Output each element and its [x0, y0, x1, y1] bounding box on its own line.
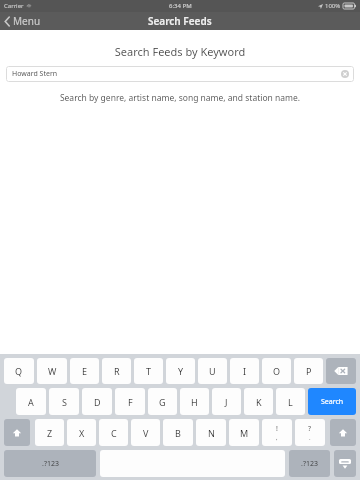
button[interactable]: E	[70, 358, 99, 384]
button[interactable]: .?123	[289, 450, 330, 477]
staticText: Q	[15, 365, 23, 377]
staticText: H	[191, 396, 198, 408]
button[interactable]: L	[276, 388, 305, 415]
button[interactable]: Shift	[4, 419, 30, 446]
staticText: Search	[321, 397, 344, 407]
staticText: E	[82, 365, 88, 377]
staticText: Z	[47, 427, 53, 439]
staticText: Howard Stern	[12, 69, 58, 79]
staticText: .?123	[301, 459, 318, 469]
button[interactable]: M	[229, 419, 259, 446]
button[interactable]: T	[134, 358, 163, 384]
button[interactable]: R	[102, 358, 131, 384]
staticText: O	[273, 365, 281, 377]
staticText: M	[240, 427, 249, 439]
staticText: S	[62, 396, 67, 408]
staticText: W	[48, 365, 57, 377]
button[interactable]: G	[148, 388, 177, 415]
staticText: Y	[178, 365, 184, 377]
button[interactable]: Backspace	[326, 358, 356, 384]
button[interactable]: ?	[295, 419, 325, 446]
button[interactable]: D	[82, 388, 112, 415]
button[interactable]: Howard Stern	[6, 66, 354, 82]
staticText: Menu	[13, 14, 41, 28]
button[interactable]: B	[163, 419, 193, 446]
button[interactable]: N	[196, 419, 226, 446]
button[interactable]: Y	[166, 358, 195, 384]
staticText: ?	[308, 424, 312, 434]
staticText: V	[143, 427, 149, 439]
button[interactable]: Menu	[0, 12, 49, 30]
staticText: T	[146, 365, 152, 377]
staticText: A	[28, 396, 34, 408]
button[interactable]: U	[198, 358, 227, 384]
staticText: ,	[276, 434, 278, 442]
staticText: D	[94, 396, 101, 408]
staticText: K	[256, 396, 262, 408]
button[interactable]: S	[49, 388, 79, 415]
staticText: Carrier	[4, 2, 24, 10]
staticText: C	[111, 427, 117, 439]
staticText: Search Feeds by Keyword	[0, 44, 360, 59]
button[interactable]: I	[230, 358, 259, 384]
button[interactable]: C	[99, 419, 128, 446]
staticText: R	[114, 365, 120, 377]
button[interactable]: K	[244, 388, 273, 415]
staticText: I	[243, 365, 247, 377]
staticText: B	[175, 427, 181, 439]
button[interactable]: W	[37, 358, 67, 384]
staticText: Search by genre, artist name, song name,…	[0, 92, 360, 104]
staticText: L	[288, 396, 293, 408]
button[interactable]: F	[115, 388, 145, 415]
button[interactable]: .?123	[4, 450, 96, 477]
button[interactable]: P	[294, 358, 323, 384]
staticText: Search Feeds	[148, 14, 212, 28]
staticText: F	[128, 396, 133, 408]
button[interactable]: J	[212, 388, 241, 415]
button[interactable]: Search	[308, 388, 356, 415]
staticText: U	[209, 365, 216, 377]
button[interactable]: Q	[4, 358, 34, 384]
staticText: J	[225, 396, 228, 408]
button[interactable]: Shift	[330, 419, 356, 446]
staticText: N	[208, 427, 215, 439]
button[interactable]: A	[16, 388, 46, 415]
staticText: X	[79, 427, 85, 439]
button[interactable]: Z	[35, 419, 64, 446]
button[interactable]: Clear text	[341, 70, 349, 78]
button[interactable]: X	[67, 419, 96, 446]
button[interactable]: V	[131, 419, 160, 446]
staticText: .	[309, 434, 311, 442]
staticText: 100%	[325, 2, 341, 10]
staticText: P	[306, 365, 312, 377]
button[interactable]: H	[180, 388, 209, 415]
staticText: 6:34 PM	[169, 2, 192, 10]
staticText: !	[276, 424, 278, 434]
button[interactable]: O	[262, 358, 291, 384]
button[interactable]: !	[262, 419, 292, 446]
button[interactable]: Hide keyboard	[334, 450, 356, 477]
staticText: .?123	[42, 459, 59, 469]
staticText: G	[159, 396, 166, 408]
